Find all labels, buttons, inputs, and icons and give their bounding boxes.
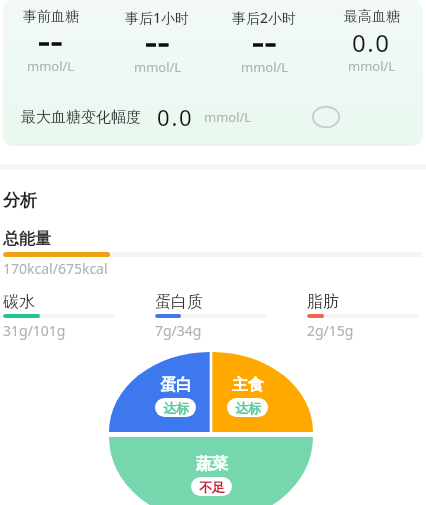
staticText: 0.0: [157, 102, 194, 132]
staticText: 分析: [3, 190, 37, 211]
staticText: 事前血糖: [23, 8, 79, 26]
staticText: mmol/L: [204, 108, 252, 126]
staticText: 7g/34g: [155, 321, 202, 340]
staticText: mmol/L: [27, 57, 75, 75]
staticText: 主食: [232, 375, 264, 395]
staticText: 2g/15g: [307, 321, 354, 340]
staticText: 170kcal/675kcal: [3, 259, 108, 278]
staticText: mmol/L: [241, 58, 289, 76]
staticText: 脂肪: [307, 292, 339, 312]
staticText: 0.0: [352, 26, 391, 59]
staticText: 31g/101g: [3, 321, 66, 340]
staticText: 碳水: [3, 292, 35, 312]
staticText: 最大血糖变化幅度: [21, 108, 141, 127]
staticText: 不足: [199, 479, 225, 495]
staticText: 蛋白质: [155, 292, 203, 312]
staticText: 蛋白: [160, 375, 192, 395]
staticText: 达标: [163, 400, 189, 416]
button[interactable]: Info: [312, 106, 340, 128]
staticText: 总能量: [3, 229, 51, 249]
staticText: 最高血糖: [344, 8, 400, 26]
staticText: 事后1小时: [125, 8, 190, 27]
staticText: 达标: [235, 400, 261, 416]
staticText: 事后2小时: [232, 8, 297, 27]
staticText: mmol/L: [348, 57, 396, 75]
staticText: mmol/L: [134, 58, 182, 76]
staticText: 蔬菜: [196, 454, 228, 474]
